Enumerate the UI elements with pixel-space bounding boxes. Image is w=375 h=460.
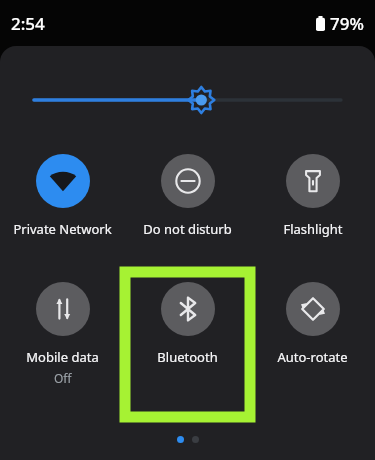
staticText: 2:54 (11, 12, 45, 35)
staticText: Auto-rotate (277, 348, 348, 366)
button[interactable]: Flashlight (250, 154, 375, 238)
button[interactable]: Mobile data (0, 282, 125, 386)
button[interactable]: Bluetooth (125, 282, 250, 366)
staticText: Flashlight (283, 220, 343, 238)
button[interactable]: Do not disturb (125, 154, 250, 238)
button[interactable]: Brightness (34, 80, 341, 120)
staticText: Mobile data (26, 348, 99, 366)
staticText: 79% (330, 12, 364, 35)
button[interactable]: Auto-rotate (250, 282, 375, 366)
staticText: Off (54, 370, 72, 386)
button[interactable]: Private Network (0, 154, 125, 238)
staticText: Private Network (13, 220, 112, 238)
staticText: Do not disturb (143, 220, 232, 238)
staticText: Bluetooth (157, 348, 218, 366)
